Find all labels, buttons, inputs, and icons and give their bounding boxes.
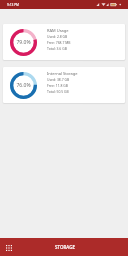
staticText: Total: 50.5 GB — [47, 89, 69, 94]
staticText: Free: 768.7 MB — [47, 40, 71, 45]
staticText: 9:13 PM — [7, 3, 19, 7]
staticText: Used: 38.7 GB — [47, 77, 70, 82]
button[interactable]: STORAGE — [55, 244, 75, 250]
staticText: 79.0% — [16, 39, 31, 46]
staticText: Used: 2.8 GB — [47, 34, 68, 39]
staticText: Total: 3.6 GB — [47, 46, 67, 51]
button[interactable]: Apps — [3, 242, 14, 253]
staticText: Internal Storage — [47, 71, 78, 76]
staticText: STORAGE — [55, 244, 75, 250]
staticText: Free: 11.8 GB — [47, 83, 68, 88]
staticText: RAM Usage — [47, 28, 69, 33]
button[interactable]: 76.0% — [3, 67, 125, 103]
staticText: 76.0% — [16, 82, 31, 89]
button[interactable]: 79.0% — [3, 24, 125, 60]
